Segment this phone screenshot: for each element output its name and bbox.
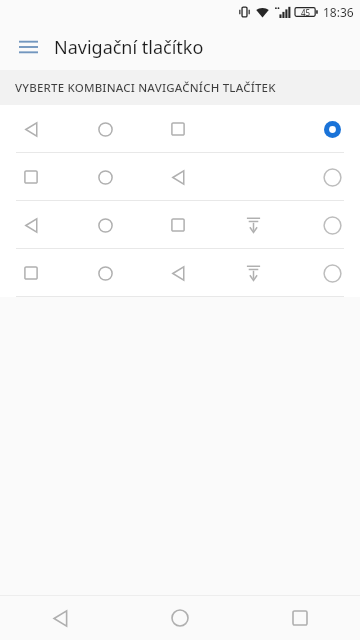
staticText: VYBERTE KOMBINACI NAVIGAČNÍCH TLAČÍTEK [15,80,276,96]
staticText: 45 [301,7,311,18]
button[interactable] [0,249,360,296]
staticText: Navigační tlačítko [54,35,204,60]
button[interactable] [0,153,360,200]
button[interactable]: Back [0,596,120,640]
button[interactable]: Home [120,596,240,640]
staticText: 18:36 [323,4,354,20]
button[interactable] [0,201,360,248]
button[interactable]: Menu [8,27,48,67]
button[interactable] [0,105,360,152]
button[interactable]: Recent apps [240,596,360,640]
